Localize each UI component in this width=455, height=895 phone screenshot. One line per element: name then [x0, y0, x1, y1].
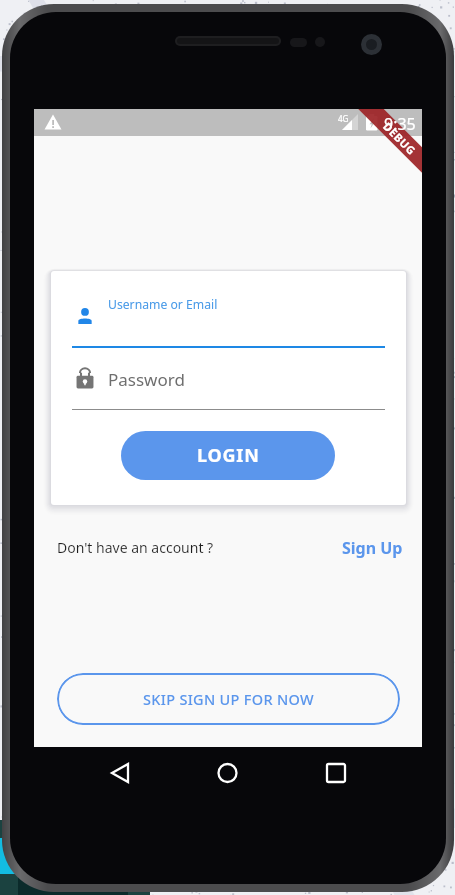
button[interactable]: SKIP SIGN UP FOR NOW [57, 673, 400, 725]
staticText: Username or Email [108, 296, 218, 313]
staticText: 4G [338, 113, 349, 124]
button[interactable]: LOGIN [121, 431, 335, 480]
button[interactable]: Sign Up [342, 537, 403, 559]
staticText: Password [108, 368, 185, 391]
staticText: LOGIN [197, 443, 260, 468]
staticText: SKIP SIGN UP FOR NOW [143, 689, 314, 709]
staticText: DEBUG [380, 119, 420, 158]
staticText: Don't have an account ? [57, 538, 214, 557]
other: System navigation bar [34, 747, 422, 805]
staticText: Sign Up [342, 537, 403, 559]
staticText: 9:35 [384, 113, 416, 135]
